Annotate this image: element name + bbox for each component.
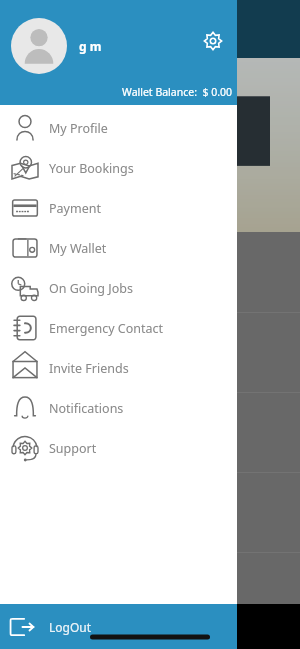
- button[interactable]: Payment: [0, 188, 237, 228]
- staticText: Invite Friends: [49, 360, 129, 377]
- staticText: Support: [49, 440, 97, 457]
- button[interactable]: [0, 312, 300, 392]
- button[interactable]: Profile photo: [11, 18, 67, 74]
- button[interactable]: Support: [0, 428, 237, 468]
- button[interactable]: My Wallet: [0, 228, 237, 268]
- button[interactable]: My Profile: [0, 108, 237, 148]
- button[interactable]: [0, 232, 300, 312]
- staticText: Wallet Balance: $ 0.00: [122, 85, 232, 99]
- staticText: Your Bookings: [49, 160, 134, 177]
- staticText: g m: [79, 38, 102, 54]
- button[interactable]: Settings: [200, 28, 226, 54]
- button[interactable]: On Going Jobs: [0, 268, 237, 308]
- button[interactable]: Emergency Contact: [0, 308, 237, 348]
- button[interactable]: [0, 552, 300, 604]
- staticText: Payment: [49, 200, 101, 217]
- staticText: On Going Jobs: [49, 280, 133, 297]
- button[interactable]: [0, 472, 300, 552]
- staticText: LogOut: [49, 619, 92, 635]
- staticText: Notifications: [49, 400, 124, 417]
- button[interactable]: Notifications: [0, 388, 237, 428]
- staticText: Emergency Contact: [49, 320, 164, 337]
- button[interactable]: [0, 392, 300, 472]
- button[interactable]: Invite Friends: [0, 348, 237, 388]
- staticText: My Profile: [49, 120, 108, 137]
- staticText: My Wallet: [49, 240, 107, 257]
- button[interactable]: LogOut: [0, 604, 237, 649]
- button[interactable]: Your Bookings: [0, 148, 237, 188]
